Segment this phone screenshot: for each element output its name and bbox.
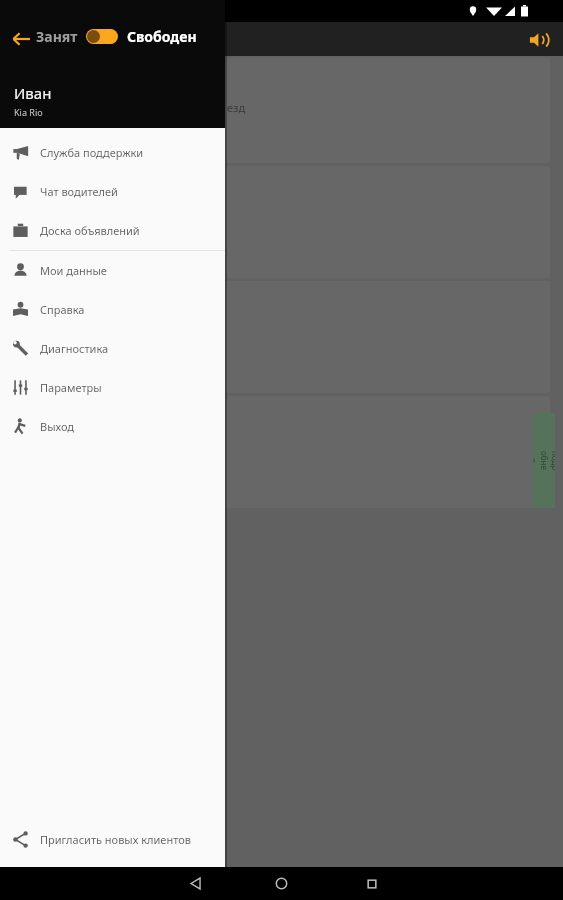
button[interactable]: Справка bbox=[0, 290, 225, 329]
staticText: Чат водителей bbox=[40, 184, 118, 199]
button[interactable]: Обзор bbox=[352, 867, 392, 900]
button[interactable]: Назад bbox=[175, 867, 215, 900]
staticText: Диагностика bbox=[40, 341, 109, 356]
button[interactable]: Мои данные bbox=[0, 251, 225, 290]
staticText: Служба поддержки bbox=[40, 145, 144, 160]
staticText: Доска объявлений bbox=[40, 223, 140, 238]
staticText: езд bbox=[227, 100, 246, 115]
button[interactable] bbox=[4, 58, 550, 163]
staticText: Иван bbox=[14, 83, 52, 103]
button[interactable]: Служба поддержки bbox=[0, 133, 225, 172]
button[interactable]: Пригласить новых клиентов bbox=[0, 820, 225, 859]
button[interactable] bbox=[4, 166, 550, 278]
button[interactable]: Главный экран bbox=[261, 867, 301, 900]
staticText: подробнее bbox=[533, 449, 555, 471]
staticText: Мои данные bbox=[40, 263, 107, 278]
staticText: Пригласить новых клиентов bbox=[40, 832, 191, 847]
button[interactable]: Выход bbox=[0, 407, 225, 446]
button[interactable]: Подробнее bbox=[533, 413, 555, 508]
button[interactable] bbox=[4, 396, 550, 508]
staticText: Параметры bbox=[40, 380, 102, 395]
staticText: Справка bbox=[40, 302, 85, 317]
button[interactable]: Иван bbox=[0, 0, 225, 128]
button[interactable] bbox=[4, 281, 550, 393]
staticText: Занят bbox=[36, 27, 78, 46]
button[interactable]: Доска объявлений bbox=[0, 211, 225, 250]
button[interactable]: Звук bbox=[522, 24, 554, 56]
button[interactable]: Диагностика bbox=[0, 329, 225, 368]
button[interactable]: Статус bbox=[86, 29, 118, 44]
staticText: Выход bbox=[40, 419, 75, 434]
staticText: Свободен bbox=[127, 27, 197, 46]
staticText: Kia Rio bbox=[14, 106, 43, 118]
button[interactable]: Параметры bbox=[0, 368, 225, 407]
button[interactable]: Назад bbox=[6, 24, 36, 54]
button[interactable]: Чат водителей bbox=[0, 172, 225, 211]
